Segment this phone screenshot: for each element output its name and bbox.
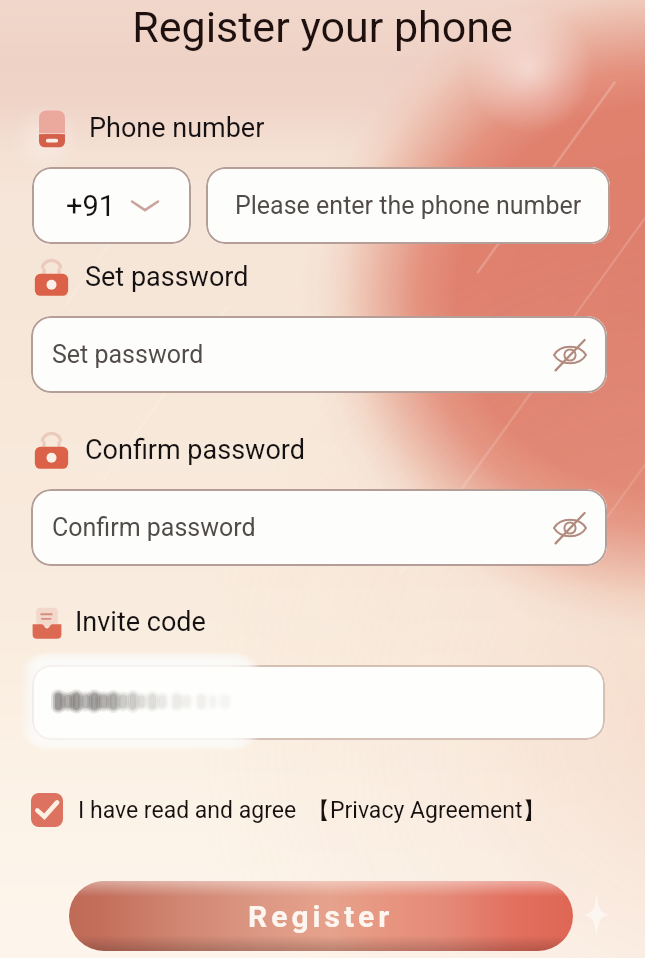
staticText: Set password	[85, 261, 249, 293]
button[interactable]	[32, 665, 605, 740]
button[interactable]: Register	[69, 881, 573, 951]
staticText: Phone number	[89, 112, 265, 144]
staticText: Register your phone	[0, 2, 645, 52]
staticText: +91	[66, 189, 116, 223]
button[interactable]: Toggle password visibility	[551, 336, 589, 374]
button[interactable]: Please enter the phone number	[206, 167, 610, 244]
staticText: Set password	[52, 340, 204, 369]
button[interactable]: 【Privacy Agreement】	[307, 796, 546, 825]
staticText: Register	[248, 899, 394, 934]
button[interactable]: Toggle password visibility	[551, 509, 589, 547]
staticText: Confirm password	[85, 434, 305, 466]
button[interactable]: I have read and agree	[78, 797, 297, 824]
staticText: Confirm password	[52, 513, 256, 542]
button[interactable]: +91	[32, 167, 191, 244]
button[interactable]: Set password	[31, 316, 607, 393]
button[interactable]: I have read and agree checkbox	[31, 793, 63, 827]
button[interactable]: Confirm password	[31, 489, 607, 566]
staticText: Please enter the phone number	[235, 191, 582, 220]
staticText: Invite code	[75, 606, 206, 638]
